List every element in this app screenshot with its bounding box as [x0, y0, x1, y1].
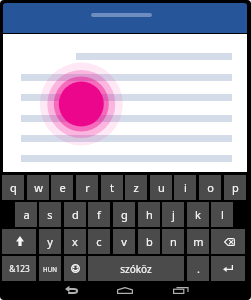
button[interactable]: r — [76, 175, 98, 200]
button[interactable]: y — [39, 229, 61, 254]
button[interactable]: f — [88, 202, 110, 227]
button[interactable]: a — [15, 202, 37, 227]
staticText: h — [146, 207, 153, 222]
button[interactable]: z — [125, 175, 147, 200]
staticText: HUN — [43, 265, 57, 273]
staticText: a — [23, 207, 30, 222]
button[interactable]: u — [150, 175, 172, 200]
staticText: i — [184, 180, 187, 195]
staticText: g — [121, 207, 128, 222]
staticText: f — [97, 207, 101, 222]
button[interactable]: &123 — [2, 256, 36, 281]
button[interactable]: l — [211, 202, 233, 227]
button[interactable]: e — [51, 175, 73, 200]
button[interactable]: Back — [61, 283, 81, 297]
button[interactable]: t — [101, 175, 123, 200]
staticText: x — [72, 234, 78, 249]
staticText: z — [133, 180, 139, 195]
staticText: o — [207, 180, 214, 195]
button[interactable]: Home — [114, 283, 136, 297]
staticText: j — [172, 207, 175, 222]
staticText: q — [10, 180, 17, 195]
button[interactable]: g — [113, 202, 135, 227]
button[interactable]: k — [187, 202, 209, 227]
staticText: y — [47, 234, 53, 249]
staticText: p — [232, 180, 239, 195]
button[interactable]: Emoji — [64, 256, 86, 281]
button[interactable]: szóköz — [88, 256, 184, 281]
staticText: d — [72, 207, 79, 222]
staticText: szóköz — [120, 262, 152, 276]
staticText: n — [170, 234, 177, 249]
button[interactable]: i — [174, 175, 196, 200]
staticText: w — [34, 180, 43, 195]
button[interactable]: Shift — [2, 229, 36, 254]
button[interactable]: HUN — [39, 256, 61, 281]
button[interactable]: m — [187, 229, 209, 254]
button[interactable]: Recent apps — [169, 283, 191, 297]
button[interactable]: v — [113, 229, 135, 254]
button[interactable]: Enter — [211, 256, 245, 281]
button[interactable]: . — [187, 256, 209, 281]
button[interactable]: w — [27, 175, 49, 200]
button[interactable]: n — [162, 229, 184, 254]
button[interactable]: o — [199, 175, 221, 200]
staticText: . — [197, 261, 200, 276]
button[interactable]: s — [39, 202, 61, 227]
staticText: b — [146, 234, 153, 249]
button[interactable]: q — [2, 175, 24, 200]
button[interactable]: x — [64, 229, 86, 254]
staticText: u — [158, 180, 165, 195]
button[interactable]: c — [88, 229, 110, 254]
button[interactable]: p — [224, 175, 246, 200]
button[interactable]: h — [138, 202, 160, 227]
staticText: c — [96, 234, 102, 249]
button[interactable]: Backspace — [211, 229, 245, 254]
staticText: l — [221, 207, 224, 222]
staticText: k — [195, 207, 201, 222]
staticText: m — [193, 234, 204, 249]
button[interactable]: b — [138, 229, 160, 254]
staticText: v — [121, 234, 127, 249]
staticText: &123 — [9, 263, 30, 274]
staticText: t — [110, 180, 114, 195]
button[interactable]: d — [64, 202, 86, 227]
button[interactable]: j — [162, 202, 184, 227]
staticText: r — [85, 180, 90, 195]
staticText: e — [59, 180, 66, 195]
staticText: s — [47, 207, 53, 222]
